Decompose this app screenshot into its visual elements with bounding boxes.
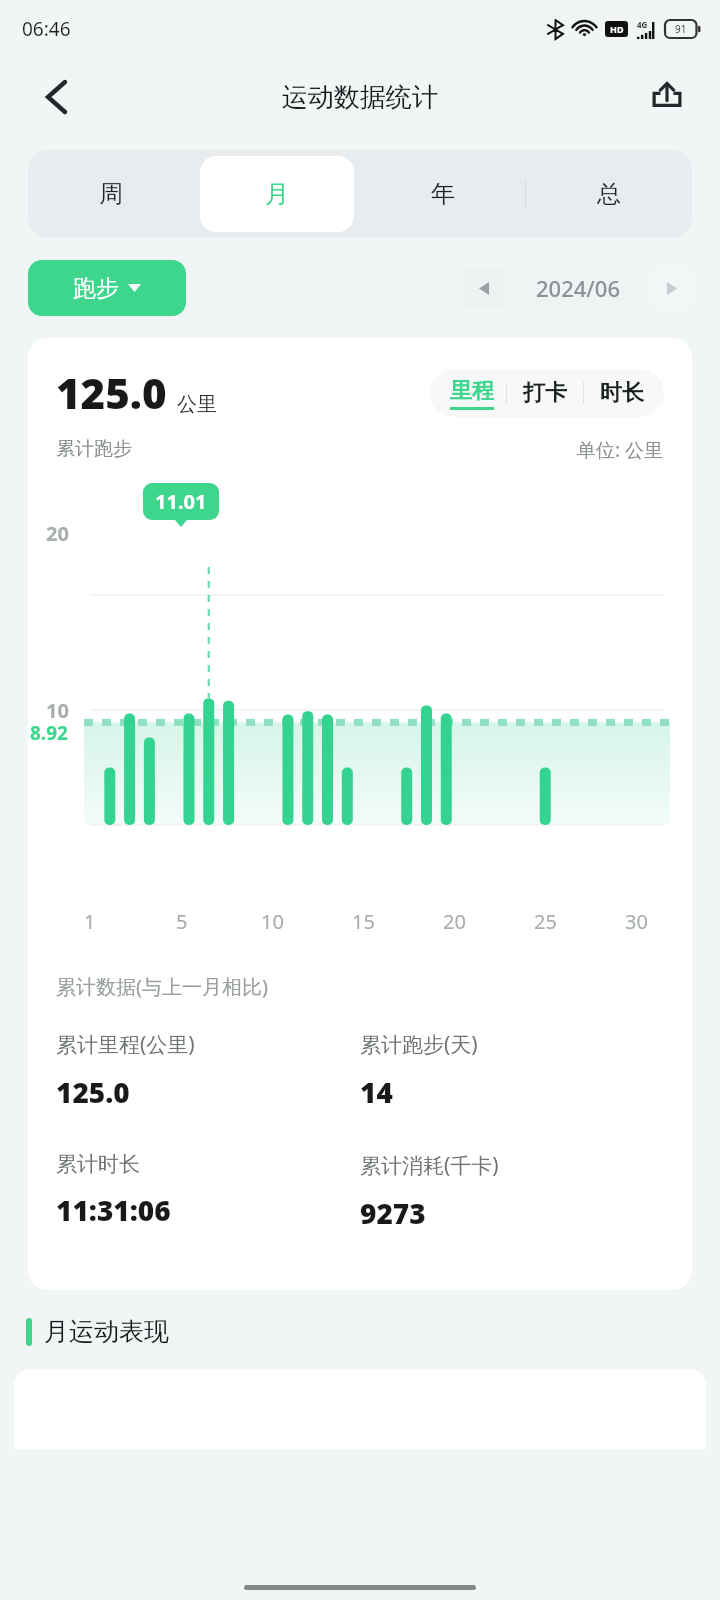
button[interactable]: 总 (532, 156, 686, 232)
staticText: 125.0 (56, 1073, 130, 1111)
staticText: 15 (352, 908, 375, 935)
button[interactable]: Share (644, 74, 690, 120)
staticText: 10 (261, 908, 284, 935)
staticText: 打卡 (523, 379, 567, 407)
staticText: 累计跑步(天) (360, 1030, 478, 1059)
staticText: 125.0 (56, 364, 167, 421)
staticText: 跑步 (73, 274, 119, 303)
button[interactable]: 2024/06 (514, 266, 642, 310)
staticText: 运动数据统计 (282, 81, 438, 114)
staticText: 91 (675, 22, 687, 36)
staticText: 25 (534, 908, 557, 935)
staticText: 年 (431, 179, 455, 209)
staticText: 累计里程(公里) (56, 1030, 195, 1059)
staticText: 8.92 (30, 720, 68, 746)
staticText: 累计数据(与上一月相比) (56, 973, 268, 1000)
staticText: HD (610, 23, 624, 35)
staticText: 公里 (177, 392, 217, 417)
staticText: 累计时长 (56, 1151, 140, 1177)
button[interactable]: Next month (652, 268, 692, 308)
button[interactable]: 时长 (600, 369, 644, 417)
staticText: 周 (99, 179, 123, 209)
staticText: 20 (443, 908, 466, 935)
staticText: 11.01 (155, 488, 207, 515)
button[interactable]: 月 (200, 156, 354, 232)
button[interactable]: 年 (366, 156, 520, 232)
staticText: 累计跑步 (56, 437, 132, 461)
staticText: 11:31:06 (56, 1191, 171, 1229)
staticText: 总 (597, 179, 621, 209)
staticText: 单位: 公里 (577, 437, 664, 463)
staticText: 2024/06 (536, 273, 620, 303)
staticText: 10 (46, 697, 69, 724)
button[interactable]: Back (34, 75, 78, 119)
staticText: 30 (625, 908, 648, 935)
staticText: 里程 (450, 377, 494, 405)
staticText: 5 (176, 908, 188, 935)
button[interactable]: Previous month (464, 268, 504, 308)
staticText: 20 (46, 520, 69, 547)
button[interactable]: 里程 (450, 369, 494, 417)
staticText: 06:46 (22, 16, 71, 42)
staticText: 4G (637, 19, 648, 30)
staticText: 月运动表现 (44, 1316, 169, 1347)
button[interactable]: 打卡 (523, 369, 567, 417)
staticText: 1 (84, 908, 96, 935)
button[interactable]: 周 (34, 156, 188, 232)
staticText: 月 (265, 179, 289, 209)
button[interactable]: 跑步 (28, 260, 186, 316)
staticText: 累计消耗(千卡) (360, 1151, 499, 1180)
staticText: 时长 (600, 379, 644, 407)
staticText: 14 (360, 1073, 393, 1111)
staticText: 9273 (360, 1194, 426, 1232)
